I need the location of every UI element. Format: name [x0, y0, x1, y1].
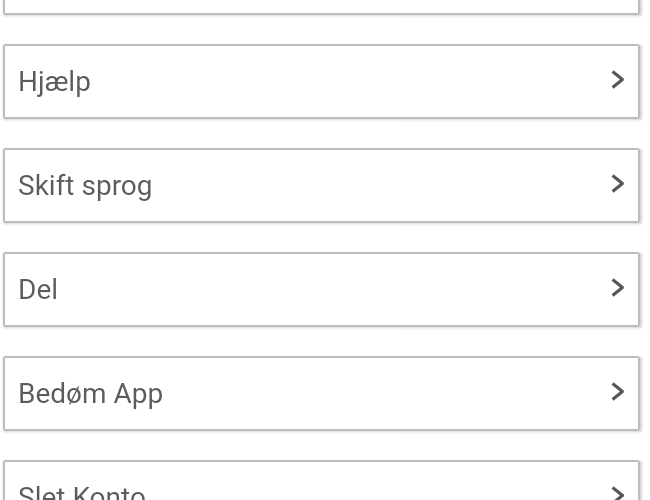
other: Open Bedøm App: [611, 382, 624, 401]
staticText: Skift sprog: [18, 169, 153, 202]
button[interactable]: Indstillinger: [3, 0, 640, 15]
button[interactable]: Del: [3, 252, 640, 327]
other: Open Slet Konto: [611, 486, 624, 500]
button[interactable]: Slet Konto: [3, 460, 640, 500]
other: Open Skift sprog: [611, 174, 624, 193]
staticText: Hjælp: [18, 65, 91, 98]
button[interactable]: Skift sprog: [3, 148, 640, 223]
button[interactable]: Bedøm App: [3, 356, 640, 431]
staticText: Slet Konto: [18, 481, 146, 500]
other: Open Del: [611, 278, 624, 297]
button[interactable]: Hjælp: [3, 44, 640, 119]
other: Open Hjælp: [611, 70, 624, 89]
staticText: Bedøm App: [18, 377, 164, 410]
staticText: Del: [18, 273, 59, 306]
